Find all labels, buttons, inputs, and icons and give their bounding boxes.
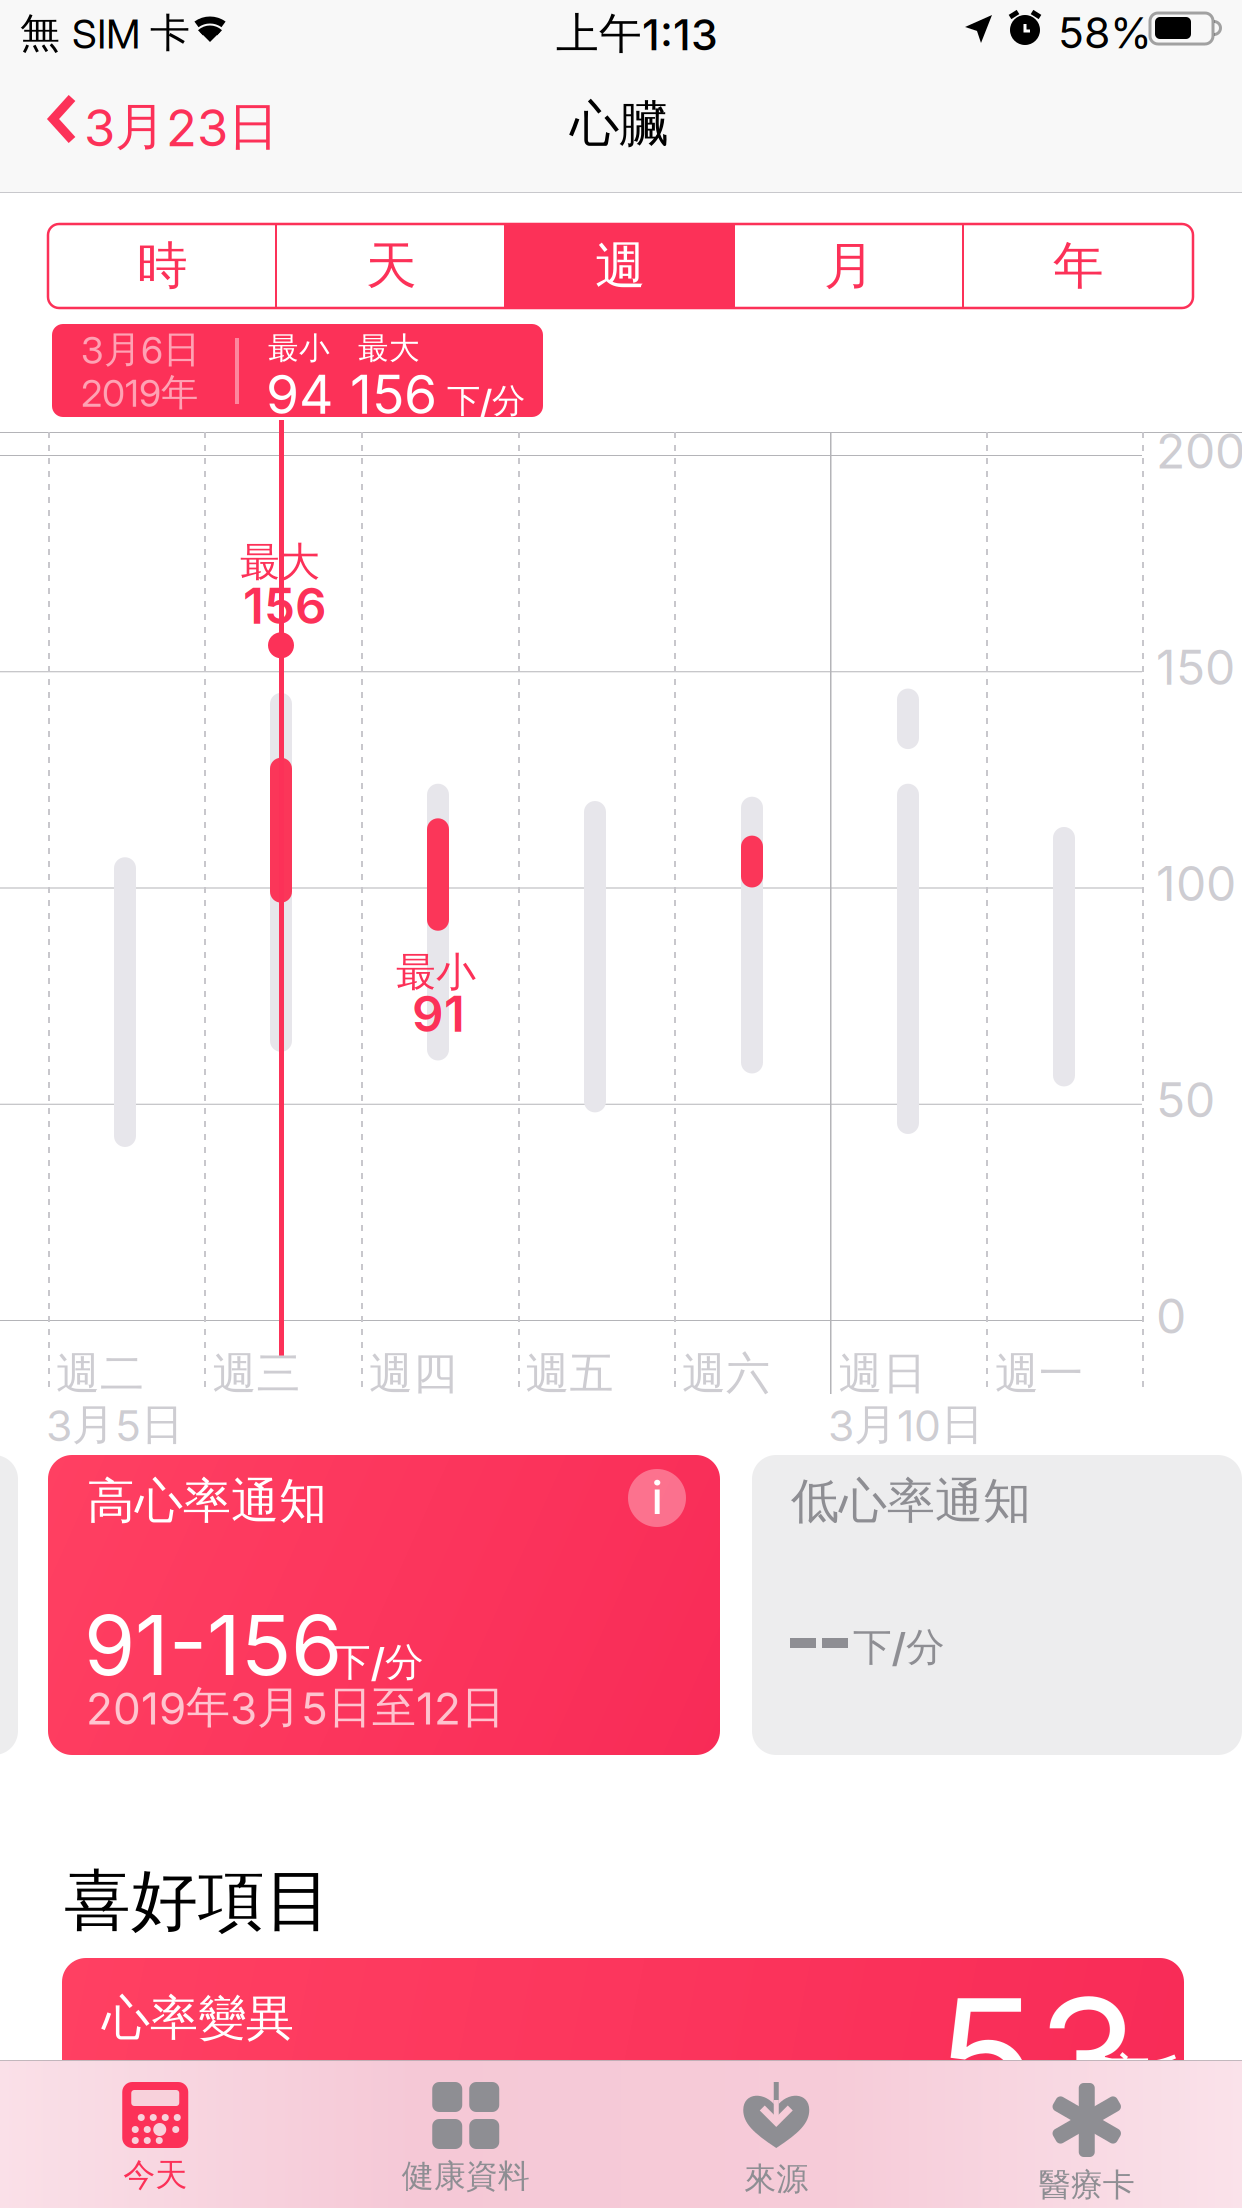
- staticText: 下/分: [447, 380, 525, 422]
- staticText: 150: [1156, 638, 1235, 696]
- staticText: 低心率通知: [791, 1471, 1031, 1531]
- staticText: 最大: [358, 329, 420, 368]
- button[interactable]: 今天: [0, 2060, 310, 2208]
- staticText: 156: [243, 576, 327, 636]
- staticText: 毫秒: [1098, 2046, 1210, 2116]
- button[interactable]: 心率變異: [62, 1958, 1184, 2178]
- staticText: 喜好項目: [64, 1859, 332, 1943]
- staticText: 下/分: [332, 1638, 424, 1687]
- button[interactable]: 天: [277, 224, 506, 308]
- staticText: 上午1:13: [556, 7, 718, 61]
- staticText: 91: [412, 984, 465, 1044]
- staticText: 無 SIM 卡: [20, 8, 190, 58]
- staticText: 週五: [525, 1346, 613, 1401]
- staticText: 時: [137, 234, 188, 298]
- staticText: 0: [1156, 1287, 1186, 1345]
- staticText: 2019年: [81, 369, 198, 416]
- staticText: 91-156: [84, 1595, 342, 1695]
- button[interactable]: 年: [964, 224, 1193, 308]
- staticText: 天: [366, 234, 417, 298]
- staticText: 週一: [995, 1346, 1083, 1401]
- staticText: 3月10日: [828, 1398, 984, 1452]
- staticText: 醫療卡: [1039, 2165, 1135, 2205]
- button[interactable]: 時: [48, 224, 277, 308]
- staticText: 94: [266, 362, 333, 426]
- staticText: 200: [1156, 422, 1242, 480]
- staticText: 今天: [123, 2155, 187, 2195]
- staticText: 3月6日: [81, 326, 200, 373]
- staticText: 3月5日: [46, 1398, 184, 1452]
- staticText: 最小: [268, 329, 330, 368]
- staticText: 月: [824, 234, 875, 298]
- button[interactable]: 高心率通知: [48, 1455, 720, 1755]
- button[interactable]: 低心率通知: [752, 1455, 1242, 1755]
- staticText: 年: [1053, 234, 1104, 298]
- staticText: 156: [350, 362, 437, 426]
- staticText: 週: [595, 234, 646, 298]
- staticText: 週三: [212, 1346, 300, 1401]
- staticText: 2019年3月5日至12日: [86, 1680, 505, 1735]
- staticText: 53: [936, 1958, 1139, 2158]
- staticText: 50: [1156, 1071, 1215, 1129]
- staticText: 3月23日: [84, 95, 279, 159]
- staticText: 58%: [1058, 7, 1152, 59]
- staticText: 下/分: [853, 1623, 945, 1672]
- staticText: 最小: [396, 947, 476, 997]
- staticText: 100: [1156, 854, 1236, 913]
- staticText: 週二: [56, 1346, 144, 1401]
- button[interactable]: 健康資料: [310, 2060, 621, 2208]
- staticText: 週四: [369, 1346, 457, 1401]
- button[interactable]: 來源: [621, 2060, 931, 2208]
- button[interactable]: 3月23日: [34, 69, 302, 179]
- button[interactable]: 醫療卡: [931, 2060, 1242, 2208]
- staticText: 高心率通知: [87, 1471, 327, 1531]
- staticText: 來源: [744, 2159, 808, 2199]
- staticText: 週六: [682, 1346, 770, 1401]
- staticText: 最大: [240, 537, 320, 587]
- staticText: 健康資料: [402, 2156, 530, 2196]
- staticText: i: [651, 1471, 662, 1525]
- staticText: 心率變異: [102, 1988, 294, 2048]
- staticText: 心臟: [570, 93, 668, 155]
- button[interactable]: 月: [735, 224, 964, 308]
- button[interactable]: 週: [506, 224, 735, 308]
- staticText: 週日: [838, 1346, 926, 1401]
